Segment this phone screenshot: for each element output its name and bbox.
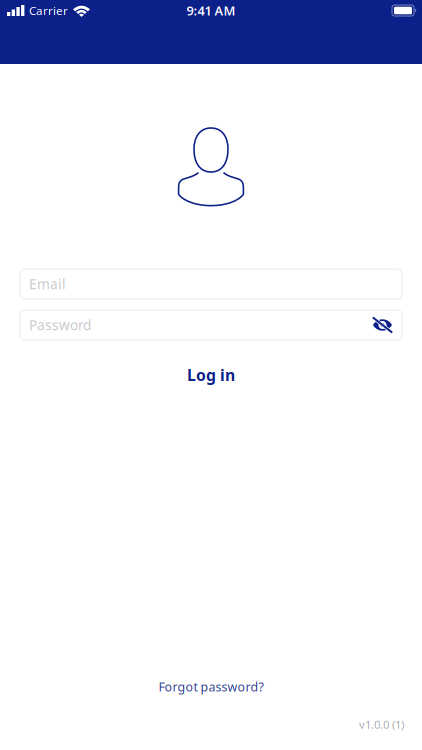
button[interactable]: Password [20,310,402,340]
staticText: Email [29,275,66,293]
staticText: Carrier [29,3,68,18]
button[interactable]: Show password [371,316,394,334]
staticText: Log in [187,364,235,386]
button[interactable]: Log in [0,362,422,388]
staticText: Password [29,316,91,334]
button[interactable]: Forgot password? [144,677,277,697]
staticText: v1.0.0 (1) [359,717,404,732]
staticText: Forgot password? [158,678,263,695]
button[interactable]: Email [20,269,402,299]
staticText: 9:41 AM [186,2,235,19]
